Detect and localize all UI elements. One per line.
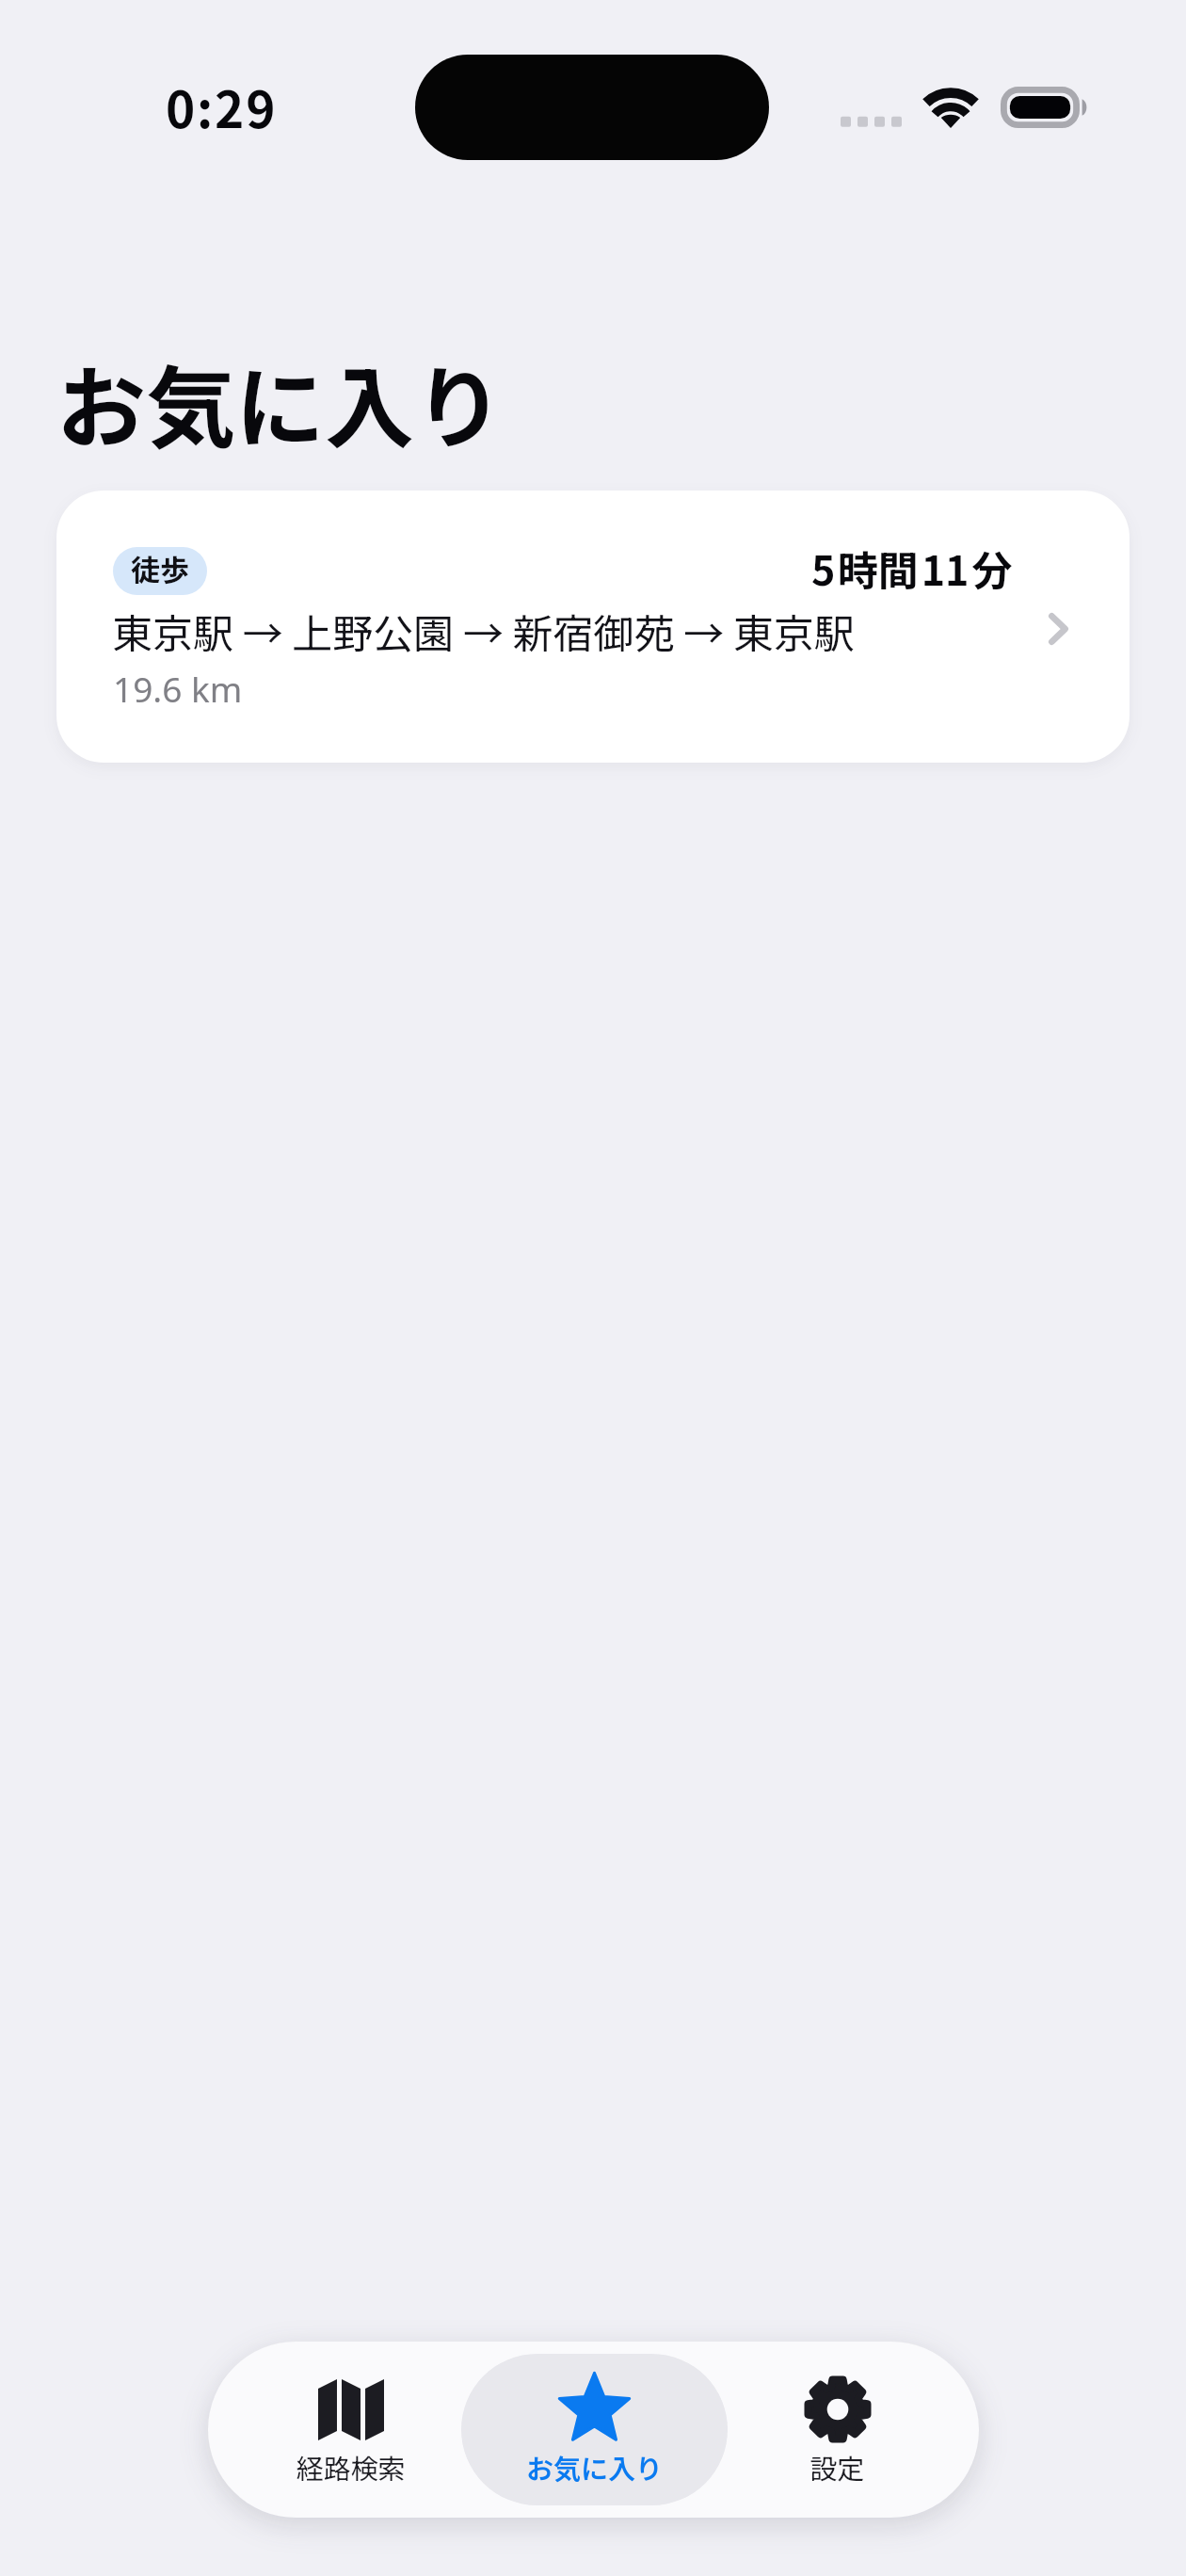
staticText: 5 時間 11 分	[811, 539, 1013, 597]
staticText: お気に入り	[56, 337, 505, 467]
button[interactable]: 徒歩	[56, 491, 1130, 763]
staticText: 徒歩	[131, 547, 189, 589]
other: Route search	[318, 2379, 384, 2440]
button[interactable]: Route search	[217, 2354, 484, 2505]
staticText: 設定	[704, 2447, 970, 2487]
staticText: 19.6 km	[113, 665, 243, 712]
staticText: 0:29	[166, 71, 278, 143]
button[interactable]: Settings	[704, 2354, 970, 2505]
other: Open route details	[1049, 613, 1068, 645]
staticText: 東京駅 → 上野公園 → 新宿御苑 → 東京駅	[112, 602, 855, 660]
staticText: 経路検索	[217, 2447, 484, 2487]
staticText: お気に入り	[461, 2447, 728, 2487]
other: Settings	[804, 2375, 872, 2443]
other: Favorites	[556, 2373, 633, 2447]
button[interactable]: Favorites	[461, 2354, 728, 2505]
